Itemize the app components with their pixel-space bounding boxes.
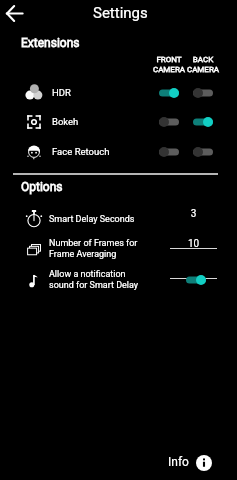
button[interactable]: Info <box>196 455 212 471</box>
staticText: Settings <box>93 4 148 22</box>
staticText: Options <box>21 180 63 194</box>
button[interactable]: Toggle off <box>193 84 213 102</box>
button[interactable]: Toggle off <box>193 143 213 161</box>
staticText: BACK CAMERA <box>173 55 233 73</box>
button[interactable]: Toggle on <box>193 113 213 131</box>
staticText: HDR <box>52 87 71 98</box>
button[interactable]: Allow a notification sound for Smart Del… <box>0 265 237 295</box>
button[interactable]: Smart Delay Seconds <box>0 204 237 234</box>
staticText: Number of Frames for Frame Averaging <box>49 238 138 260</box>
staticText: FRONT CAMERA <box>139 55 199 73</box>
staticText: Smart Delay Seconds <box>49 214 135 225</box>
button[interactable]: Number of Frames for Frame Averaging <box>0 234 237 264</box>
button[interactable]: Face Retouch <box>0 137 237 166</box>
button[interactable]: Toggle off <box>159 113 179 131</box>
staticText: Allow a notification sound for Smart Del… <box>49 269 139 291</box>
button[interactable]: Bokeh <box>0 107 237 136</box>
staticText: 3 <box>170 208 217 220</box>
staticText: Bokeh <box>52 116 79 127</box>
button[interactable]: Toggle on <box>159 84 179 102</box>
button[interactable]: HDR <box>0 78 237 107</box>
staticText: Info <box>168 455 189 469</box>
staticText: Face Retouch <box>52 146 110 157</box>
button[interactable]: Back <box>2 1 27 26</box>
staticText: Extensions <box>21 36 80 50</box>
staticText: 10 <box>170 238 217 250</box>
button[interactable]: Toggle on <box>186 271 206 289</box>
button[interactable]: Toggle off <box>159 143 179 161</box>
